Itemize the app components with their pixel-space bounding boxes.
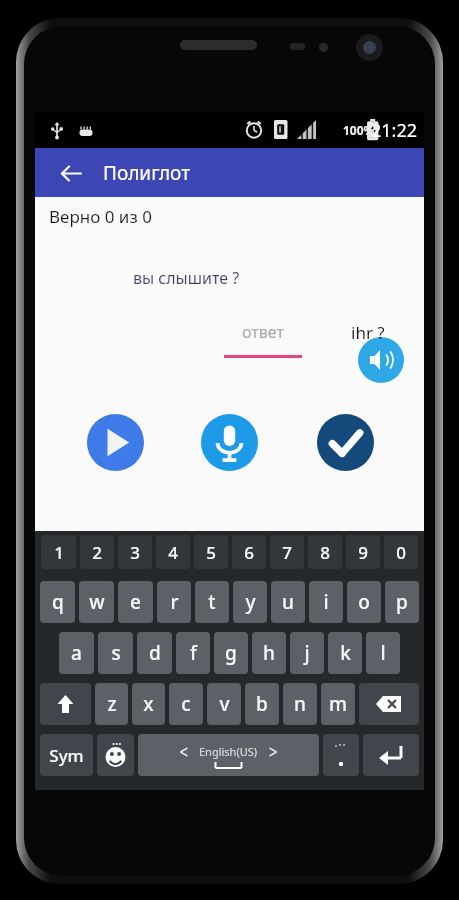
button[interactable]: 5: [194, 535, 228, 569]
button[interactable]: y: [233, 581, 267, 623]
staticText: 9: [358, 541, 368, 564]
staticText: 5: [206, 541, 216, 564]
button[interactable]: Play sound: [358, 337, 404, 383]
button[interactable]: x: [132, 683, 165, 725]
staticText: y: [245, 589, 256, 615]
button[interactable]: Emoji: [97, 734, 134, 776]
button[interactable]: Shift: [40, 683, 91, 725]
staticText: g: [225, 640, 237, 666]
button[interactable]: 0: [384, 535, 418, 569]
staticText: 100%: [343, 122, 375, 138]
button[interactable]: 7: [270, 535, 304, 569]
staticText: a: [71, 640, 82, 666]
staticText: English(US): [199, 744, 258, 759]
button[interactable]: v: [207, 683, 241, 725]
button[interactable]: ihr ?: [337, 321, 399, 361]
staticText: 6: [244, 541, 254, 564]
staticText: q: [52, 589, 64, 615]
staticText: f: [190, 640, 197, 666]
button[interactable]: d: [137, 632, 172, 674]
staticText: 4: [168, 541, 178, 564]
staticText: k: [340, 640, 351, 666]
button[interactable]: 3: [118, 535, 152, 569]
button[interactable]: j: [290, 632, 324, 674]
staticText: j: [304, 640, 310, 666]
button[interactable]: p: [385, 581, 419, 623]
staticText: l: [380, 640, 386, 666]
staticText: w: [89, 589, 105, 615]
button[interactable]: h: [252, 632, 286, 674]
button[interactable]: f: [176, 632, 210, 674]
button[interactable]: t: [195, 581, 229, 623]
staticText: 0: [396, 541, 406, 564]
button[interactable]: b: [245, 683, 279, 725]
staticText: ihr ?: [351, 321, 385, 344]
staticText: s: [111, 640, 121, 666]
button[interactable]: 1: [41, 535, 76, 569]
staticText: 3: [130, 541, 140, 564]
staticText: x: [143, 691, 154, 717]
button[interactable]: 6: [232, 535, 266, 569]
staticText: r: [170, 589, 179, 615]
staticText: 2: [92, 541, 102, 564]
button[interactable]: Back: [53, 156, 87, 190]
button[interactable]: Play: [87, 414, 144, 471]
staticText: 21:22: [371, 118, 418, 143]
button[interactable]: 9: [346, 535, 380, 569]
staticText: p: [396, 589, 408, 615]
button[interactable]: r: [157, 581, 191, 623]
staticText: v: [219, 691, 230, 717]
staticText: e: [130, 589, 141, 615]
staticText: Верно 0 из 0: [49, 205, 152, 228]
button[interactable]: o: [347, 581, 381, 623]
button[interactable]: k: [328, 632, 362, 674]
button[interactable]: n: [283, 683, 317, 725]
staticText: Полиглот: [103, 160, 191, 186]
staticText: o: [358, 589, 370, 615]
staticText: c: [181, 691, 191, 717]
button[interactable]: Enter: [363, 734, 419, 776]
button[interactable]: e: [118, 581, 153, 623]
button[interactable]: l: [366, 632, 400, 674]
button[interactable]: Record: [201, 414, 258, 471]
button[interactable]: z: [95, 683, 128, 725]
staticText: t: [208, 589, 216, 615]
button[interactable]: c: [169, 683, 203, 725]
button[interactable]: s: [98, 632, 133, 674]
button[interactable]: ответ: [221, 321, 305, 361]
button[interactable]: 4: [156, 535, 190, 569]
staticText: 8: [320, 541, 330, 564]
staticText: h: [263, 640, 275, 666]
staticText: b: [256, 691, 268, 717]
button[interactable]: i: [309, 581, 343, 623]
staticText: u: [282, 589, 294, 615]
staticText: ответ: [242, 321, 284, 343]
staticText: n: [294, 691, 306, 717]
button[interactable]: Backspace: [359, 683, 419, 725]
button[interactable]: u: [271, 581, 305, 623]
staticText: Sym: [49, 744, 84, 767]
button[interactable]: q: [40, 581, 75, 623]
staticText: z: [107, 691, 117, 717]
staticText: вы слышите ?: [133, 267, 240, 289]
button[interactable]: w: [79, 581, 114, 623]
staticText: m: [329, 691, 347, 717]
button[interactable]: Sym: [40, 734, 93, 776]
staticText: d: [149, 640, 161, 666]
staticText: i: [323, 589, 329, 615]
button[interactable]: m: [321, 683, 355, 725]
button[interactable]: Confirm: [317, 414, 374, 471]
staticText: 1: [54, 541, 64, 564]
button[interactable]: Period: [323, 734, 359, 776]
button[interactable]: a: [59, 632, 94, 674]
button[interactable]: 2: [80, 535, 114, 569]
button[interactable]: Space: [138, 734, 319, 776]
button[interactable]: g: [214, 632, 248, 674]
button[interactable]: 8: [308, 535, 342, 569]
staticText: 7: [282, 541, 292, 564]
